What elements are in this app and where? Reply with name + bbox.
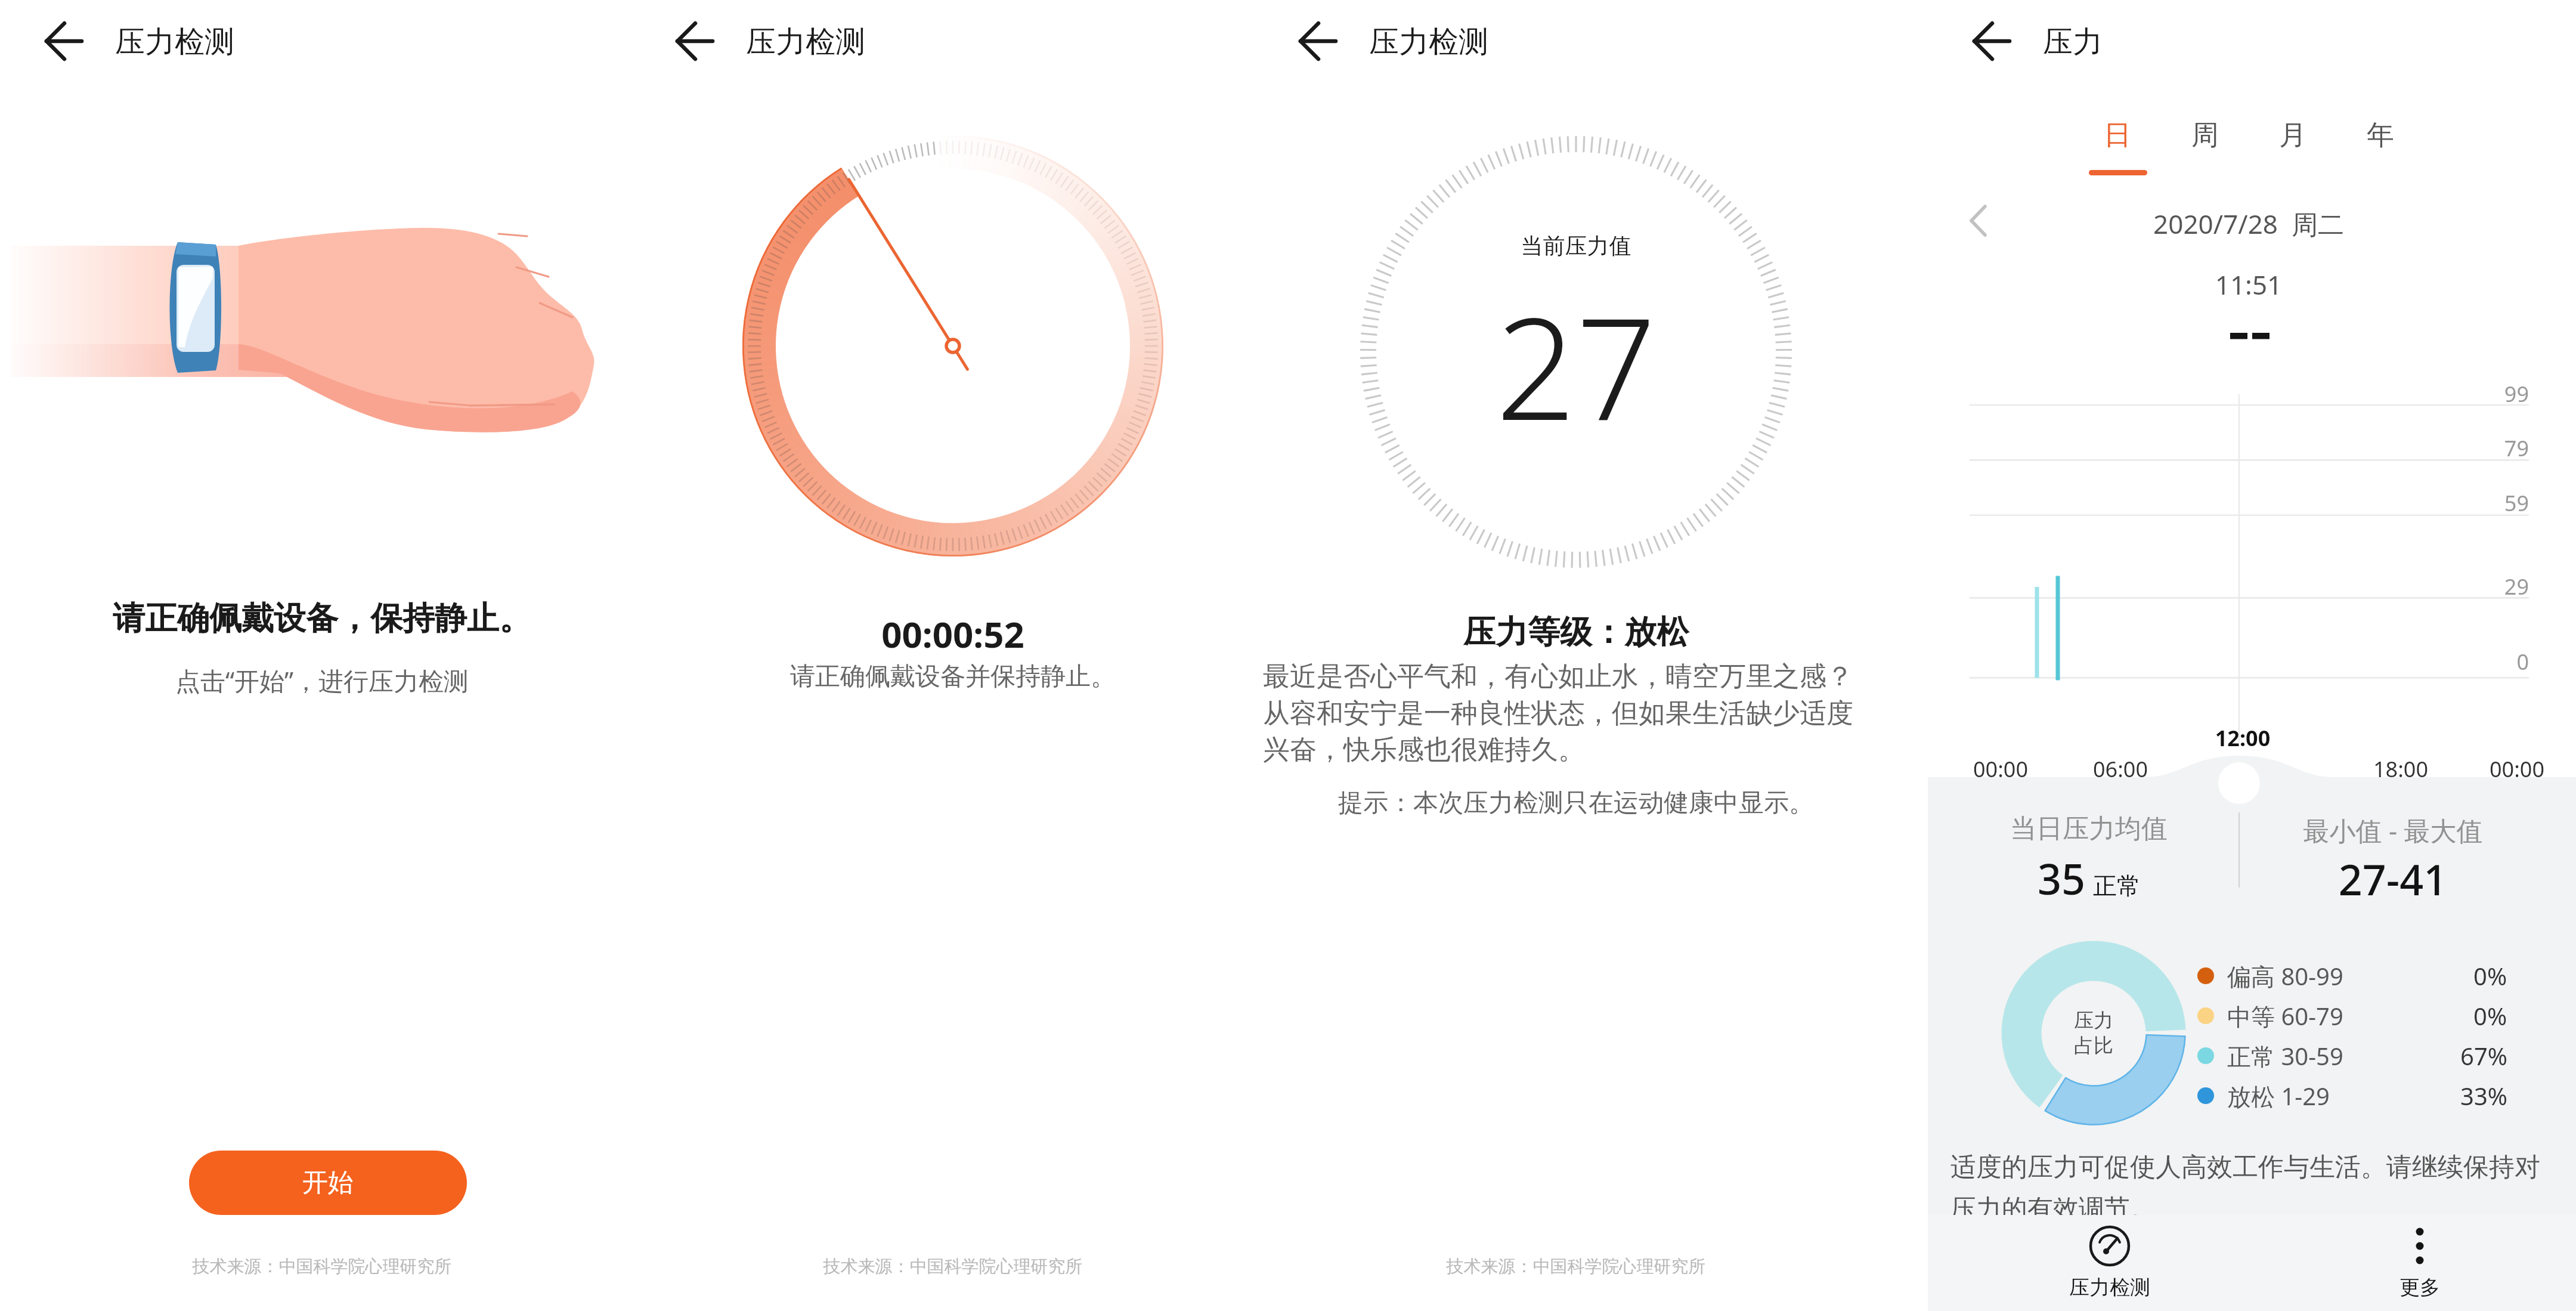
button[interactable]: 周 [2172, 118, 2238, 180]
button[interactable]: 正常 30-59 [2197, 1037, 2507, 1075]
staticText: 0% [2473, 1000, 2507, 1032]
staticText: 00:00 [1941, 755, 2060, 784]
staticText: 适度的压力可促使人高效工作与生活。请继续保持对压力的有效调节。 [1950, 1151, 2554, 1225]
button[interactable]: 压力检测 [2038, 1215, 2181, 1311]
staticText: 年 [2367, 118, 2394, 153]
staticText: 12:00 [2183, 723, 2302, 753]
button[interactable]: 日 [2084, 118, 2151, 180]
staticText: 00:00 [2457, 755, 2576, 784]
staticText: 中等 60-79 [2227, 1000, 2343, 1032]
button[interactable]: Back [26, 14, 80, 68]
staticText: 压力 [2067, 1008, 2120, 1033]
staticText: 压力检测 [115, 23, 234, 61]
staticText: 请正确佩戴设备，保持静止。 [0, 598, 644, 639]
staticText: 压力检测 [1369, 23, 1488, 61]
button[interactable]: 中等 60-79 [2197, 997, 2507, 1035]
staticText: 99 [2457, 379, 2529, 409]
staticText: 29 [2457, 572, 2529, 601]
button[interactable]: Back [657, 14, 711, 68]
staticText: 压力检测 [746, 23, 865, 61]
button[interactable]: Back [1954, 14, 2008, 68]
staticText: 提示：本次压力检测只在运动健康中显示。 [1254, 787, 1898, 819]
staticText: 点击“开始”，进行压力检测 [0, 663, 644, 697]
staticText: 06:00 [2061, 755, 2180, 784]
staticText: 最近是否心平气和，有心如止水，晴空万里之感？从容和安宁是一种良性状态，但如果生活… [1263, 660, 1876, 766]
button[interactable]: 放松 1-29 [2197, 1077, 2507, 1115]
button[interactable]: 开始 [189, 1151, 467, 1215]
staticText: 67% [2460, 1040, 2507, 1072]
staticText: 占比 [2067, 1033, 2120, 1058]
staticText: 27-41 [2244, 851, 2542, 907]
staticText: 技术来源：中国科学院心理研究所 [0, 1256, 644, 1278]
button[interactable]: More [2348, 1215, 2491, 1311]
staticText: 压力检测 [2069, 1275, 2150, 1300]
staticText: 日 [2104, 118, 2131, 153]
staticText: 35 [2038, 850, 2086, 907]
staticText: 2020/7/28 周二 [1954, 206, 2543, 242]
staticText: 技术来源：中国科学院心理研究所 [1254, 1256, 1898, 1278]
staticText: 请正确佩戴设备并保持静止。 [631, 661, 1275, 692]
staticText: 最小值 - 最大值 [2244, 812, 2542, 848]
button[interactable]: 月 [2259, 118, 2326, 180]
staticText: 周 [2191, 118, 2219, 153]
staticText: 00:00:52 [631, 610, 1275, 658]
staticText: 放松 1-29 [2227, 1080, 2330, 1112]
staticText: 27 [1254, 270, 1898, 461]
staticText: 18:00 [2341, 755, 2460, 784]
staticText: 更多 [2399, 1275, 2440, 1300]
staticText: 开始 [302, 1167, 354, 1199]
staticText: 压力 [2043, 23, 2103, 61]
button[interactable]: Previous day [1954, 197, 2002, 245]
staticText: 正常 [2093, 871, 2141, 901]
staticText: 33% [2460, 1080, 2507, 1112]
staticText: 压力等级：放松 [1254, 612, 1898, 653]
button[interactable]: 偏高 80-99 [2197, 957, 2507, 995]
staticText: 0% [2473, 960, 2507, 992]
staticText: 技术来源：中国科学院心理研究所 [631, 1256, 1275, 1278]
staticText: 正常 30-59 [2227, 1040, 2343, 1072]
staticText: 11:51 [1954, 267, 2543, 302]
staticText: 0 [2457, 647, 2529, 676]
staticText: 月 [2279, 118, 2306, 153]
staticText: 当前压力值 [1254, 232, 1898, 260]
staticText: 59 [2457, 488, 2529, 518]
button[interactable]: Back [1280, 14, 1334, 68]
staticText: 79 [2457, 434, 2529, 463]
staticText: 当日压力均值 [1940, 812, 2238, 845]
staticText: 偏高 80-99 [2227, 960, 2343, 992]
button[interactable]: 年 [2347, 118, 2414, 180]
